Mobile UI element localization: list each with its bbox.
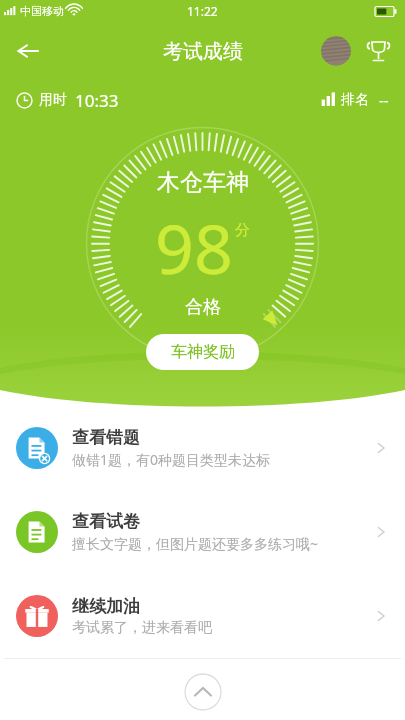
staticText: 排名	[341, 91, 369, 109]
button[interactable]: Profile	[321, 36, 351, 66]
button[interactable]: 车神奖励	[146, 334, 259, 370]
staticText: 做错1题，有0种题目类型未达标	[72, 450, 271, 469]
button[interactable]: Scroll to top	[184, 673, 222, 711]
staticText: 中国移动	[20, 4, 64, 18]
staticText: --	[379, 90, 389, 110]
staticText: 查看错题	[72, 427, 140, 448]
staticText: 木仓车神	[157, 168, 249, 197]
staticText: 查看试卷	[72, 511, 140, 532]
button[interactable]: Trophy	[361, 34, 395, 68]
staticText: 合格	[185, 296, 221, 319]
staticText: 98	[155, 201, 233, 294]
staticText: 11:22	[187, 3, 218, 19]
staticText: 分	[235, 221, 250, 240]
button[interactable]: 查看试卷	[0, 490, 405, 574]
staticText: 擅长文字题，但图片题还要多多练习哦~	[72, 534, 319, 553]
staticText: 用时	[39, 91, 67, 109]
staticText: 10:33	[75, 89, 119, 112]
staticText: 继续加油	[72, 596, 140, 617]
staticText: 考试成绩	[163, 39, 243, 64]
button[interactable]: 查看错题	[0, 406, 405, 490]
button[interactable]: Back	[6, 29, 50, 73]
staticText: 车神奖励	[171, 342, 235, 362]
button[interactable]: 继续加油	[0, 574, 405, 658]
staticText: 考试累了，进来看看吧	[72, 619, 212, 637]
